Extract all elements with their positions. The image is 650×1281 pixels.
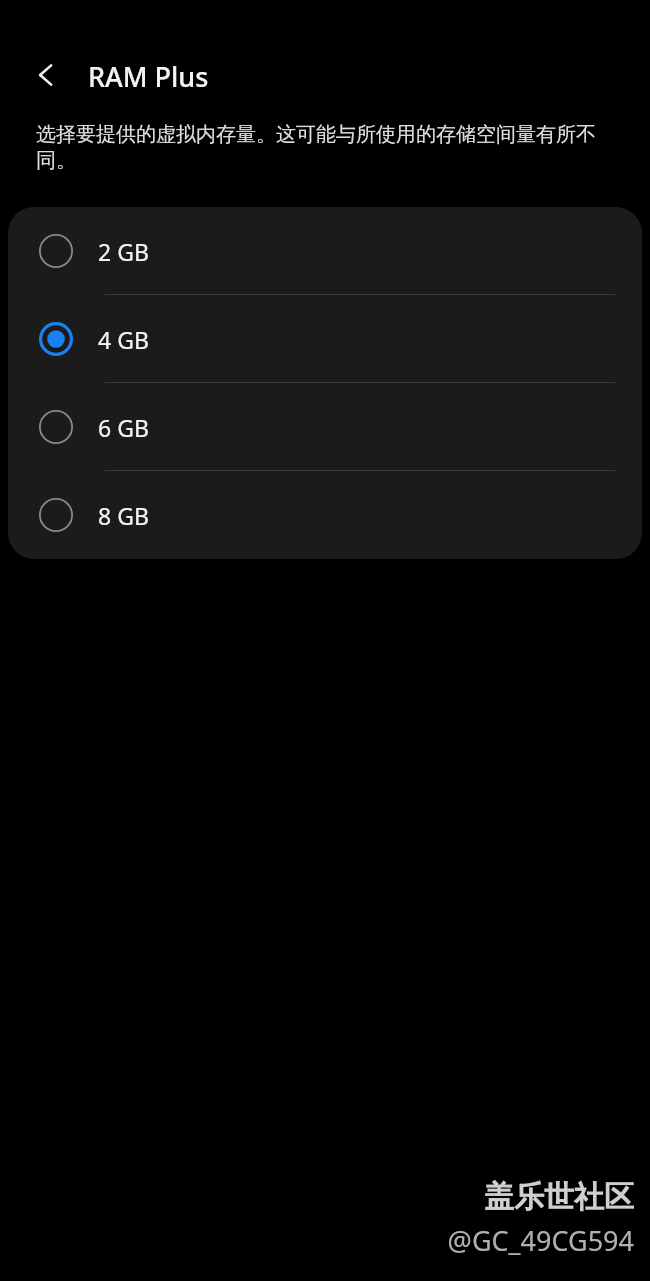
button[interactable]: 2 GB — [8, 207, 642, 295]
button[interactable]: 4 GB — [8, 295, 642, 383]
button[interactable]: 6 GB — [8, 383, 642, 471]
staticText: 8 GB — [98, 500, 149, 531]
button[interactable]: Back — [25, 52, 71, 98]
staticText: 选择要提供的虚拟内存量。这可能与所使用的存储空间量有所不同。 — [36, 122, 620, 173]
staticText: RAM Plus — [88, 58, 209, 95]
staticText: 盖乐世社区 — [484, 1178, 634, 1216]
staticText: @GC_49CG594 — [447, 1222, 634, 1259]
staticText: 4 GB — [98, 324, 149, 355]
button[interactable]: 8 GB — [8, 471, 642, 559]
staticText: 6 GB — [98, 412, 149, 443]
staticText: 2 GB — [98, 236, 149, 267]
